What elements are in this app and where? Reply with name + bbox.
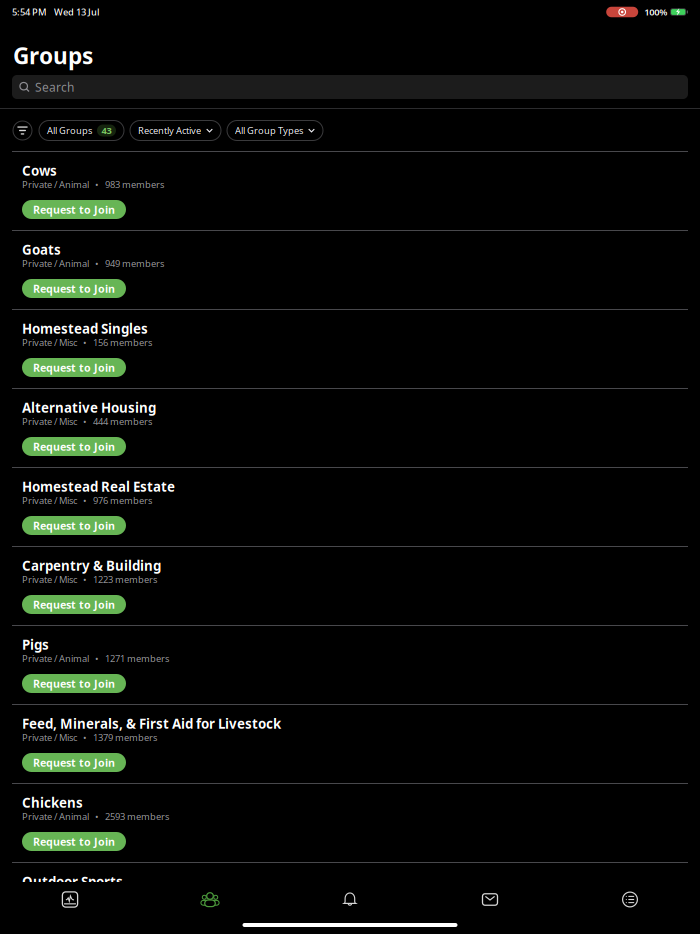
staticText: Cows <box>22 162 57 179</box>
staticText: 156 members <box>93 336 152 349</box>
staticText: • <box>95 810 99 823</box>
staticText: Alternative Housing <box>22 399 156 416</box>
button[interactable]: Cows <box>0 163 700 219</box>
staticText: Private / Misc <box>22 573 77 586</box>
button[interactable]: Chickens <box>0 795 700 851</box>
button[interactable]: Homestead Singles <box>0 321 700 377</box>
staticText: Request to Join <box>33 834 115 849</box>
button[interactable]: Request to Join <box>22 200 126 219</box>
button[interactable]: Homestead Real Estate <box>0 479 700 535</box>
staticText: Private / Misc <box>22 889 77 902</box>
button[interactable]: All Groups <box>39 120 124 140</box>
staticText: Private / Animal <box>22 257 89 270</box>
staticText: Homestead Real Estate <box>22 478 175 495</box>
staticText: • <box>83 573 87 586</box>
staticText: Request to Join <box>33 518 115 533</box>
staticText: All Group Types <box>235 124 303 137</box>
staticText: 949 members <box>105 257 164 270</box>
button[interactable]: Outdoor Sports <box>0 874 700 930</box>
button[interactable]: Notifications <box>280 886 420 913</box>
button[interactable]: Feed <box>0 886 140 913</box>
staticText: Recently Active <box>138 124 201 137</box>
button[interactable]: Request to Join <box>22 279 126 298</box>
staticText: Private / Misc <box>22 494 77 507</box>
staticText: 1223 members <box>93 573 157 586</box>
button[interactable]: Groups <box>140 886 280 913</box>
staticText: All Groups <box>47 124 92 137</box>
staticText: Request to Join <box>33 676 115 691</box>
button[interactable]: Request to Join <box>22 753 126 772</box>
staticText: Request to Join <box>33 439 115 454</box>
staticText: Homestead Singles <box>22 320 148 337</box>
staticText: • <box>95 257 99 270</box>
button[interactable]: Request to Join <box>22 595 126 614</box>
staticText: Request to Join <box>33 597 115 612</box>
staticText: Pigs <box>22 636 49 653</box>
button[interactable]: Messages <box>420 886 560 913</box>
button[interactable]: Filter <box>12 120 33 141</box>
staticText: 2593 members <box>105 810 169 823</box>
button[interactable]: Recently Active <box>130 120 221 140</box>
button[interactable]: Feed, Minerals, & First Aid for Livestoc… <box>0 716 700 772</box>
button[interactable]: Alternative Housing <box>0 400 700 456</box>
button[interactable]: Request to Join <box>22 437 126 456</box>
staticText: Goats <box>22 241 61 258</box>
staticText: Feed, Minerals, & First Aid for Livestoc… <box>22 715 281 732</box>
staticText: 976 members <box>93 494 152 507</box>
staticText: Search <box>35 79 74 95</box>
staticText: 444 members <box>93 415 152 428</box>
button[interactable]: Search <box>12 75 688 99</box>
button[interactable]: Menu <box>560 886 700 913</box>
staticText: Private / Animal <box>22 652 89 665</box>
staticText: Groups <box>13 40 93 70</box>
staticText: 1271 members <box>105 652 169 665</box>
staticText: Request to Join <box>33 755 115 770</box>
staticText: • <box>95 178 99 191</box>
staticText: 983 members <box>105 178 164 191</box>
staticText: Wed 13 Jul <box>54 6 100 18</box>
button[interactable]: Goats <box>0 242 700 298</box>
button[interactable]: Carpentry & Building <box>0 558 700 614</box>
staticText: • <box>83 415 87 428</box>
staticText: 43 <box>101 124 111 137</box>
staticText: • <box>83 494 87 507</box>
staticText: Request to Join <box>33 360 115 375</box>
staticText: Request to Join <box>33 202 115 217</box>
button[interactable]: Request to Join <box>22 674 126 693</box>
staticText: Request to Join <box>33 281 115 296</box>
staticText: • <box>83 731 87 744</box>
button[interactable]: Request to Join <box>22 516 126 535</box>
staticText: Private / Animal <box>22 810 89 823</box>
staticText: Private / Animal <box>22 178 89 191</box>
button[interactable]: Request to Join <box>22 358 126 377</box>
staticText: Private / Misc <box>22 336 77 349</box>
staticText: Carpentry & Building <box>22 557 161 574</box>
staticText: 1379 members <box>93 731 157 744</box>
staticText: 100% <box>644 6 667 18</box>
button[interactable]: Request to Join <box>22 832 126 851</box>
button[interactable]: Pigs <box>0 637 700 693</box>
staticText: Private / Misc <box>22 415 77 428</box>
staticText: Private / Misc <box>22 731 77 744</box>
staticText: 5:54 PM <box>12 6 47 18</box>
staticText: • <box>95 652 99 665</box>
staticText: • <box>83 336 87 349</box>
staticText: Outdoor Sports <box>22 873 123 890</box>
staticText: Chickens <box>22 794 83 811</box>
button[interactable]: All Group Types <box>227 120 323 140</box>
